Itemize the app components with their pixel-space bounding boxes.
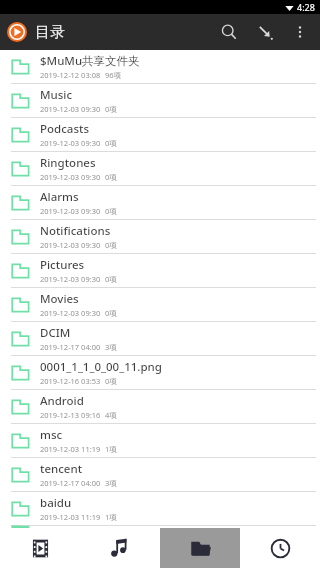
staticText: 2019-12-03 11:19 — [40, 512, 101, 522]
staticText: 1项 — [105, 512, 117, 522]
staticText: 0项 — [105, 138, 117, 148]
staticText: 96项 — [105, 70, 122, 80]
button[interactable]: Music — [0, 84, 320, 118]
staticText: 2019-12-03 09:30 — [40, 308, 101, 318]
button[interactable]: Movies — [0, 288, 320, 322]
staticText: Alarms — [40, 189, 79, 205]
staticText: 0项 — [105, 104, 117, 114]
staticText: tencent — [40, 461, 83, 477]
staticText: 4:28 — [297, 1, 315, 13]
staticText: 0001_1_1_0_00_11.png — [40, 359, 162, 375]
button[interactable]: Music — [80, 528, 160, 568]
button[interactable]: Transfer — [247, 14, 283, 50]
button[interactable]: $MuMu共享文件夹 — [0, 50, 320, 84]
staticText: 目录 — [35, 23, 65, 42]
staticText: 0项 — [105, 240, 117, 250]
staticText: Podcasts — [40, 121, 89, 137]
staticText: 2019-12-17 04:00 — [40, 478, 101, 488]
staticText: baidu — [40, 495, 72, 511]
staticText: $MuMu共享文件夹 — [40, 53, 140, 69]
button[interactable]: backups — [0, 526, 320, 528]
staticText: 0项 — [105, 376, 117, 386]
staticText: 2019-12-03 09:30 — [40, 104, 101, 114]
staticText: Android — [40, 393, 84, 409]
staticText: 3项 — [105, 478, 117, 488]
button[interactable]: Files — [160, 528, 240, 568]
button[interactable]: Podcasts — [0, 118, 320, 152]
button[interactable]: Android — [0, 390, 320, 424]
staticText: 2019-12-16 03:53 — [40, 376, 101, 386]
staticText: 1项 — [105, 444, 117, 454]
button[interactable]: DCIM — [0, 322, 320, 356]
button[interactable]: tencent — [0, 458, 320, 492]
button[interactable]: More options — [283, 15, 317, 49]
staticText: msc — [40, 427, 63, 443]
button[interactable]: Alarms — [0, 186, 320, 220]
staticText: DCIM — [40, 325, 71, 341]
staticText: 0项 — [105, 206, 117, 216]
staticText: 2019-12-03 09:30 — [40, 240, 101, 250]
button[interactable]: msc — [0, 424, 320, 458]
staticText: Movies — [40, 291, 79, 307]
staticText: 2019-12-12 03:08 — [40, 70, 101, 80]
staticText: 4项 — [105, 410, 117, 420]
button[interactable]: 0001_1_1_0_00_11.png — [0, 356, 320, 390]
staticText: Pictures — [40, 257, 85, 273]
staticText: 2019-12-03 09:30 — [40, 274, 101, 284]
staticText: 2019-12-03 11:19 — [40, 444, 101, 454]
staticText: Notifications — [40, 223, 111, 239]
button[interactable]: Recent — [240, 528, 320, 568]
staticText: 2019-12-03 09:30 — [40, 206, 101, 216]
button[interactable]: Ringtones — [0, 152, 320, 186]
button[interactable]: baidu — [0, 492, 320, 526]
staticText: 0项 — [105, 172, 117, 182]
staticText: Music — [40, 87, 73, 103]
staticText: 2019-12-03 09:30 — [40, 172, 101, 182]
staticText: 0项 — [105, 308, 117, 318]
staticText: 2019-12-13 09:16 — [40, 410, 101, 420]
staticText: 3项 — [105, 342, 117, 352]
button[interactable]: Pictures — [0, 254, 320, 288]
staticText: 2019-12-17 04:00 — [40, 342, 101, 352]
staticText: 2019-12-03 09:30 — [40, 138, 101, 148]
button[interactable]: Videos — [0, 528, 80, 568]
staticText: Ringtones — [40, 155, 96, 171]
button[interactable]: Notifications — [0, 220, 320, 254]
staticText: 0项 — [105, 274, 117, 284]
button[interactable]: Search — [211, 14, 247, 50]
